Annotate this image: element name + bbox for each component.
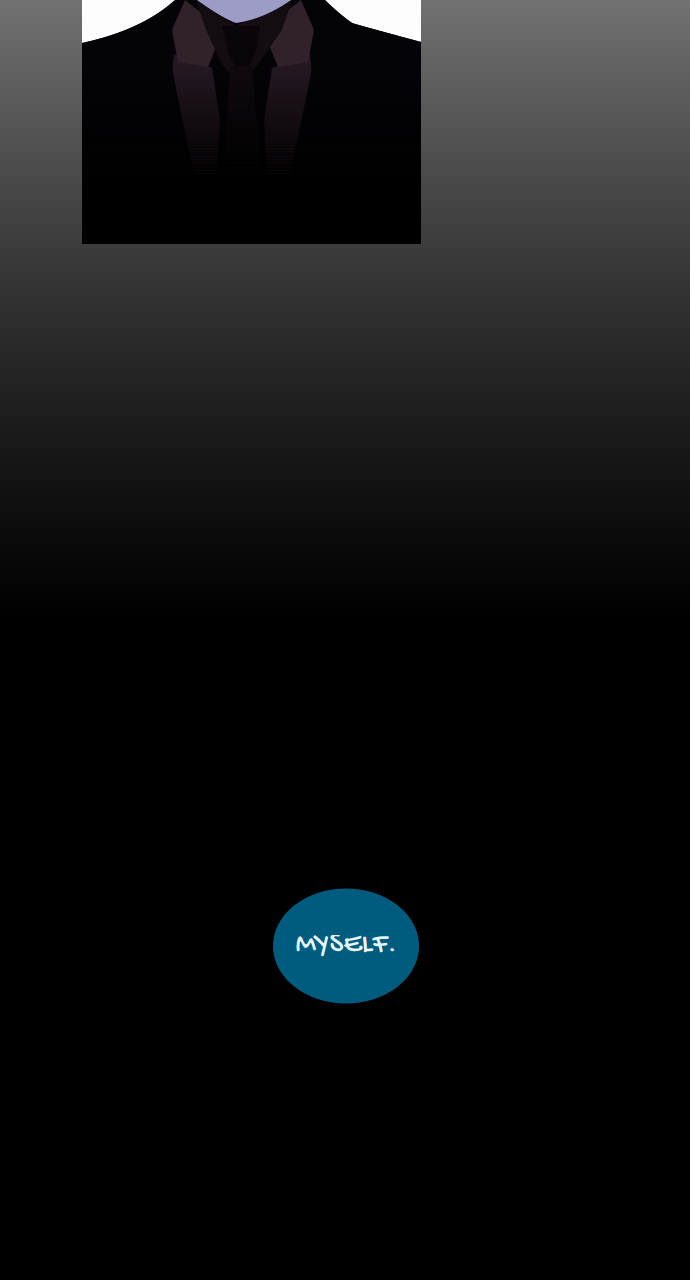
staticText: MYSELF. <box>295 929 396 963</box>
